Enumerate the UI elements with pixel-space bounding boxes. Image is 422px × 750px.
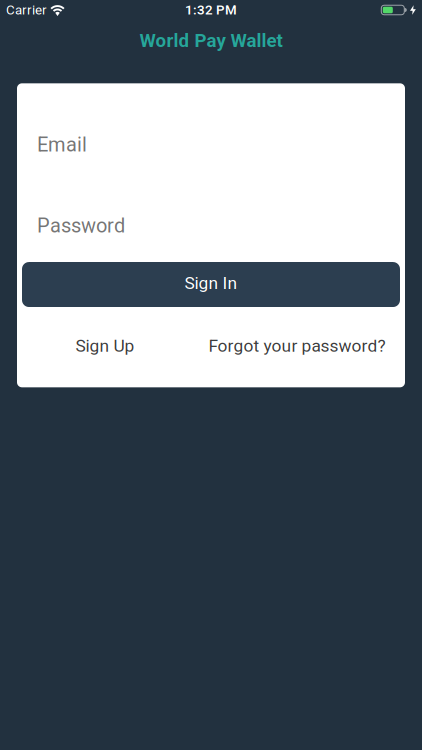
staticText: Carrier (6, 2, 47, 18)
staticText: 1:32 PM (185, 2, 237, 18)
staticText: Sign Up (75, 336, 134, 356)
staticText: Password (37, 214, 125, 237)
staticText: Email (37, 133, 87, 156)
staticText: Forgot your password? (208, 336, 385, 356)
staticText: Sign In (184, 273, 237, 293)
staticText: World Pay Wallet (139, 30, 282, 51)
